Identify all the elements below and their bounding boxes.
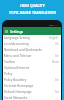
staticText: Language Setting [4, 36, 30, 40]
staticText: Forecast Homepage [4, 84, 34, 88]
button[interactable]: Menu and Title bar [3, 53, 61, 59]
button[interactable]: Toolbar [3, 59, 61, 65]
button[interactable]: Forecast Homepage [3, 83, 61, 89]
staticText: Default Homepage [4, 90, 32, 94]
staticText: Set [55, 90, 59, 94]
button[interactable]: Notebook and Bookmarks [3, 47, 61, 53]
staticText: On [55, 54, 59, 58]
staticText: HIGH QUALITY [20, 3, 45, 8]
staticText: Notebook and Bookmarks [4, 48, 42, 52]
button[interactable]: Policy Bouldery [3, 77, 61, 83]
button[interactable]: Default Homepage [3, 89, 61, 95]
staticText: On [55, 78, 59, 82]
button[interactable]: Open navigation menu [4, 29, 9, 34]
staticText: Optional Internet [4, 66, 30, 70]
button[interactable]: Social Networks [3, 95, 61, 100]
button[interactable]: Language Setting [3, 35, 61, 41]
staticText: Settings [10, 29, 24, 34]
button[interactable]: Optional Internet [3, 65, 61, 71]
staticText: Menu and Title bar [4, 54, 32, 58]
staticText: On [55, 42, 59, 46]
staticText: Local Accounting [4, 42, 29, 46]
staticText: Social Networks [4, 96, 28, 100]
staticText: Toolbar [4, 60, 15, 64]
staticText: Policy Bouldery [4, 78, 27, 82]
button[interactable]: Policy [3, 71, 61, 77]
staticText: ▬▬ 9:41 [49, 23, 59, 26]
staticText: Policy [4, 72, 13, 76]
staticText: English [49, 36, 59, 40]
staticText: Show [52, 60, 59, 64]
staticText: TOPIC-BASED TRANSLATION [9, 10, 56, 15]
button[interactable]: Local Accounting [3, 41, 61, 47]
